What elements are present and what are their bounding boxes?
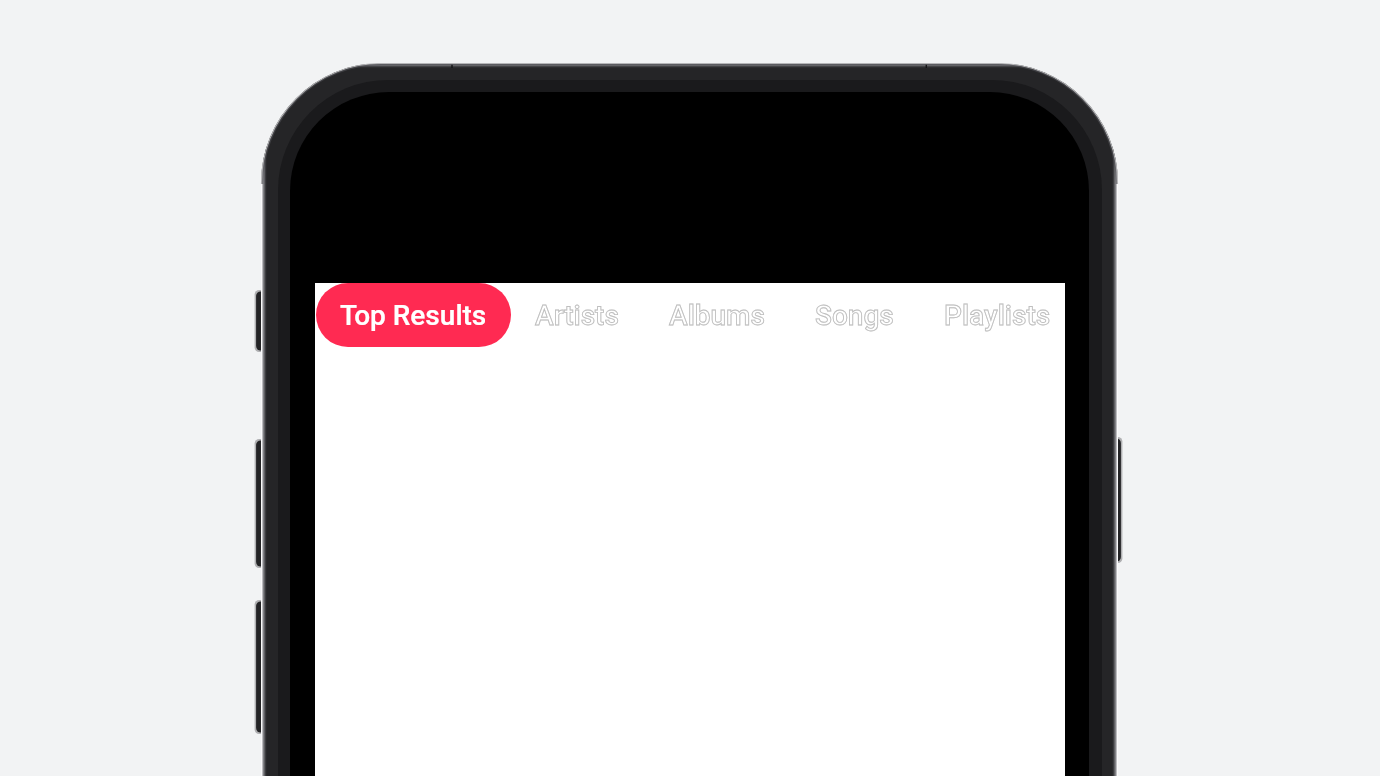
staticText: Albums	[669, 299, 765, 332]
staticText: Artists	[535, 299, 619, 332]
button[interactable]: Albums	[644, 283, 790, 347]
button[interactable]: Playlists	[919, 283, 1065, 347]
button[interactable]: Songs	[790, 283, 919, 347]
button[interactable]: Top Results	[316, 283, 511, 347]
staticText: Top Results	[340, 299, 487, 332]
staticText: Playlists	[944, 299, 1040, 332]
staticText: Songs	[815, 299, 894, 332]
button[interactable]: Artists	[510, 283, 644, 347]
